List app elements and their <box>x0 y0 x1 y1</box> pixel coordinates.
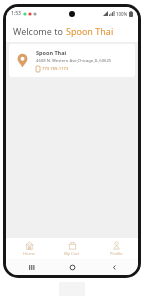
staticText: Home <box>23 251 35 257</box>
button[interactable]: Location <box>9 44 135 77</box>
button[interactable]: Recents <box>14 259 48 275</box>
button[interactable]: Back <box>97 259 131 275</box>
button[interactable]: Profile <box>95 238 137 259</box>
button[interactable]: Home <box>8 238 50 259</box>
staticText: 100% <box>116 11 128 17</box>
staticText: Welcome to <box>13 25 66 37</box>
button[interactable]: My Cart <box>51 238 93 259</box>
staticText: Profile <box>110 251 123 257</box>
staticText: Spoon Thai <box>66 25 114 37</box>
staticText: 773 769-1173 <box>42 66 69 72</box>
staticText: Spoon Thai <box>36 49 67 56</box>
staticText: 4608 N. Western Ave,Chicago,IL,60625 <box>36 58 112 64</box>
staticText: My Cart <box>64 251 80 257</box>
other: Call <box>36 66 40 72</box>
other: Location <box>15 53 30 68</box>
button[interactable]: Home <box>55 259 89 275</box>
staticText: 1:53 <box>11 10 21 17</box>
